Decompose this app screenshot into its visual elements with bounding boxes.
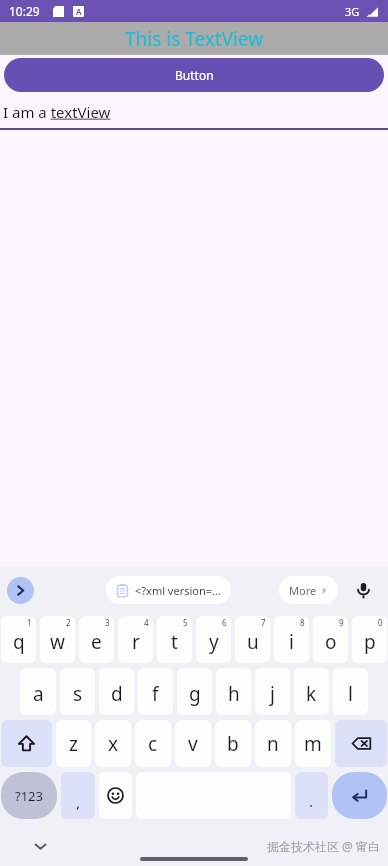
staticText: m (304, 731, 322, 757)
button[interactable]: z (56, 720, 91, 767)
staticText: s (73, 681, 83, 707)
staticText: 8 (300, 617, 305, 628)
button[interactable]: , (61, 772, 95, 819)
staticText: 5 (183, 617, 188, 628)
button[interactable]: s (60, 668, 95, 715)
button[interactable]: i (274, 616, 309, 663)
staticText: This is TextView (125, 26, 264, 52)
staticText: 7 (261, 617, 266, 628)
button[interactable]: Enter (332, 772, 387, 819)
button[interactable]: . (295, 772, 328, 819)
button[interactable]: x (95, 720, 131, 767)
button[interactable]: Emoji (99, 772, 132, 819)
staticText: r (132, 629, 140, 655)
staticText: 1 (27, 617, 32, 628)
button[interactable]: Expand toolbar (7, 577, 34, 604)
staticText: 3 (105, 617, 110, 628)
button[interactable]: d (99, 668, 134, 715)
staticText: A (76, 6, 82, 17)
button[interactable]: b (215, 720, 251, 767)
staticText: ?123 (15, 787, 43, 805)
button[interactable]: o (313, 616, 348, 663)
staticText: 4 (144, 617, 149, 628)
staticText: b (227, 731, 239, 757)
button[interactable]: t (157, 616, 192, 663)
staticText: t (171, 629, 178, 655)
button[interactable]: Shift (1, 720, 52, 767)
staticText: w (50, 629, 65, 655)
staticText: p (364, 629, 376, 655)
staticText: d (111, 681, 123, 707)
staticText: x (108, 731, 119, 757)
button[interactable]: ?123 (1, 772, 57, 819)
staticText: a (33, 681, 44, 707)
staticText: q (13, 629, 25, 655)
staticText: k (306, 681, 317, 707)
staticText: 0 (378, 617, 383, 628)
staticText: y (209, 629, 219, 655)
staticText: 3G (345, 4, 360, 19)
staticText: f (152, 681, 159, 707)
staticText: e (91, 629, 102, 655)
button[interactable]: u (235, 616, 270, 663)
button[interactable]: f (138, 668, 173, 715)
staticText: . (309, 791, 314, 811)
button[interactable]: Button (4, 58, 384, 92)
staticText: l (348, 681, 353, 707)
button[interactable]: g (177, 668, 212, 715)
staticText: 10:29 (9, 3, 40, 19)
staticText: u (247, 629, 259, 655)
staticText: z (69, 731, 78, 757)
staticText: , (76, 792, 81, 812)
button[interactable]: h (216, 668, 251, 715)
button[interactable]: l (333, 668, 368, 715)
button[interactable]: p (352, 616, 387, 663)
button[interactable]: v (175, 720, 211, 767)
button[interactable]: a (20, 668, 56, 715)
button[interactable]: Voice input (350, 577, 376, 603)
button[interactable]: j (255, 668, 290, 715)
staticText: 9 (339, 617, 344, 628)
button[interactable]: More (279, 576, 338, 604)
staticText: 掘金技术社区 @ 甯白 (266, 838, 380, 854)
staticText: Button (175, 67, 214, 83)
staticText: I am a textView (3, 102, 111, 122)
button[interactable]: n (255, 720, 291, 767)
button[interactable]: y (196, 616, 231, 663)
staticText: 2 (66, 617, 71, 628)
button[interactable]: k (294, 668, 329, 715)
staticText: g (189, 681, 201, 707)
button[interactable]: c (135, 720, 171, 767)
staticText: c (148, 731, 158, 757)
button[interactable]: q (1, 616, 36, 663)
staticText: i (289, 629, 294, 655)
staticText: 6 (222, 617, 227, 628)
staticText: n (267, 731, 279, 757)
staticText: More (289, 583, 317, 598)
button[interactable]: m (295, 720, 331, 767)
button[interactable]: Hide keyboard (27, 833, 53, 859)
staticText: j (270, 681, 275, 707)
button[interactable]: <?xml version=… (106, 576, 231, 604)
button[interactable]: r (118, 616, 153, 663)
staticText: h (228, 681, 240, 707)
button[interactable]: I am a textView (0, 102, 388, 130)
staticText: v (188, 731, 198, 757)
staticText: o (325, 629, 337, 655)
button[interactable]: e (79, 616, 114, 663)
button[interactable]: w (40, 616, 75, 663)
staticText: <?xml version=… (135, 583, 221, 598)
button[interactable]: Backspace (335, 720, 387, 767)
